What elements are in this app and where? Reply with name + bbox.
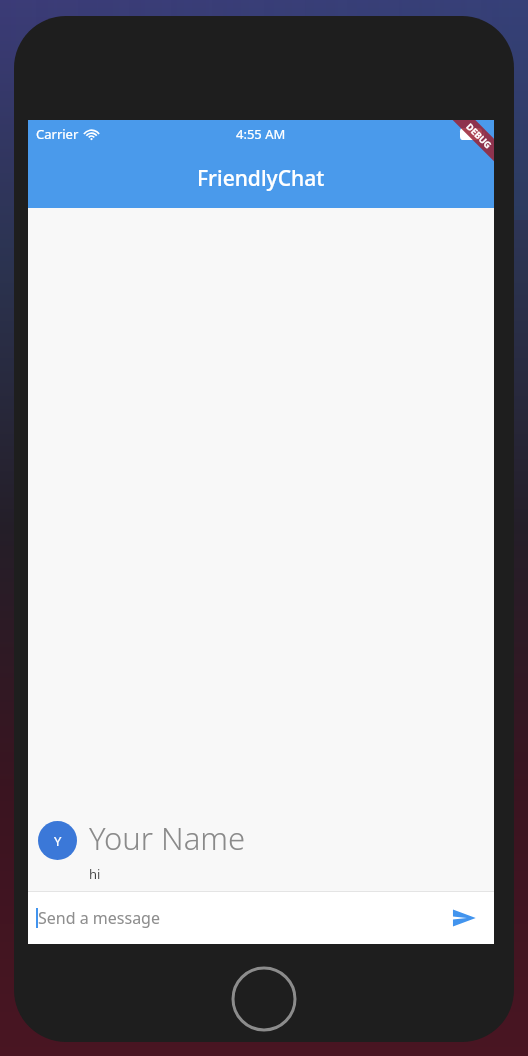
staticText: hi xyxy=(89,865,101,883)
button[interactable]: Send a message xyxy=(36,892,442,944)
button[interactable]: Send xyxy=(442,896,486,940)
staticText: Y xyxy=(54,832,62,850)
staticText: Your Name xyxy=(89,817,246,859)
staticText: Carrier xyxy=(36,125,79,143)
button[interactable]: Home xyxy=(231,966,297,1032)
button[interactable]: Y xyxy=(38,817,484,883)
staticText: DEBUG xyxy=(464,120,494,151)
staticText: Send a message xyxy=(38,907,160,929)
staticText: FriendlyChat xyxy=(197,164,325,193)
staticText: 4:55 AM xyxy=(236,125,286,143)
